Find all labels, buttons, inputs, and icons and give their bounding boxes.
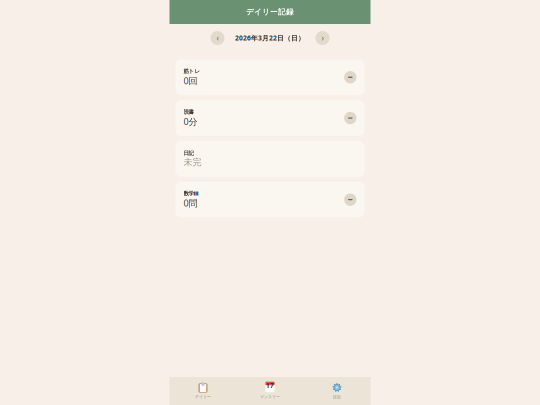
staticText: 未完: [183, 157, 201, 168]
staticText: デイリー: [195, 394, 211, 399]
staticText: 設定: [333, 394, 341, 399]
button[interactable]: 前の日: [210, 31, 224, 45]
button[interactable]: 数学Ⅲ: [175, 182, 364, 217]
staticText: ‹: [216, 33, 218, 43]
button[interactable]: 次の日: [315, 31, 329, 45]
staticText: 筋トレ: [183, 68, 200, 74]
button[interactable]: 日記: [175, 141, 364, 177]
staticText: 0回: [183, 74, 197, 87]
button[interactable]: 筋トレ: [175, 59, 364, 95]
staticText: 17: [266, 381, 274, 390]
staticText: デイリー記録: [246, 7, 294, 17]
staticText: 日記: [183, 150, 193, 157]
staticText: 2026年3月22日（日）: [235, 33, 305, 43]
staticText: 0問: [183, 197, 197, 209]
staticText: 読書: [183, 108, 193, 115]
staticText: 0分: [183, 115, 197, 128]
button[interactable]: 読書: [175, 100, 364, 136]
staticText: マンスリー: [260, 394, 280, 399]
staticText: ›: [321, 33, 323, 43]
button[interactable]: デイリー: [169, 377, 236, 405]
button[interactable]: 17: [236, 377, 303, 405]
staticText: 数学Ⅲ: [183, 190, 198, 197]
button[interactable]: 設定: [303, 377, 370, 405]
